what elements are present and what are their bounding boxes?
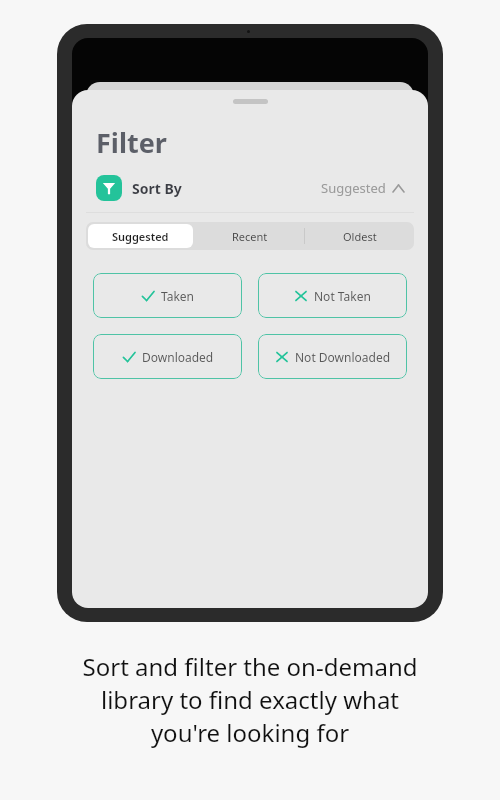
staticText: Sort By <box>132 179 182 198</box>
staticText: Recent <box>232 229 268 244</box>
button[interactable]: Not Downloaded <box>258 334 407 379</box>
staticText: Not Downloaded <box>295 349 391 365</box>
button[interactable]: Suggested <box>88 224 193 248</box>
button[interactable]: Downloaded <box>93 334 242 379</box>
button[interactable]: Filter <box>72 171 428 205</box>
other: Filter <box>96 175 122 201</box>
button[interactable]: Recent <box>195 222 304 250</box>
staticText: Not Taken <box>314 288 371 304</box>
staticText: Filter <box>96 124 167 161</box>
staticText: Taken <box>161 288 195 304</box>
other: Collapse <box>393 185 404 192</box>
staticText: Downloaded <box>142 349 214 365</box>
staticText: Sort and filter the on-demand library to… <box>26 650 474 749</box>
button[interactable]: Not Taken <box>258 273 407 318</box>
button[interactable]: Taken <box>93 273 242 318</box>
staticText: Suggested <box>112 229 169 244</box>
staticText: Suggested <box>321 179 386 197</box>
staticText: Oldest <box>343 229 377 244</box>
button[interactable]: Oldest <box>305 222 414 250</box>
